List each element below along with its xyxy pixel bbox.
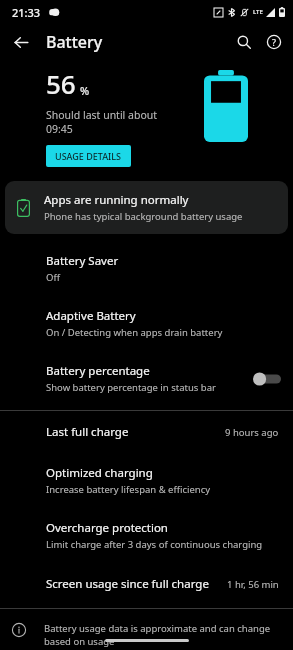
staticText: Overcharge protection <box>46 520 168 536</box>
button[interactable]: USAGE DETAILS <box>46 145 131 167</box>
staticText: Adaptive Battery <box>46 308 136 324</box>
staticText: Last full charge <box>46 424 225 440</box>
staticText: Battery usage data is approximate and ca… <box>44 622 271 635</box>
button[interactable]: Help <box>261 29 287 55</box>
button[interactable]: Overcharge protection <box>0 508 293 563</box>
button[interactable]: Last full charge <box>0 411 293 453</box>
staticText: LTE <box>253 8 263 16</box>
button[interactable]: Back <box>8 29 34 55</box>
button[interactable]: Apps are running normally <box>5 181 288 234</box>
staticText: Optimized charging <box>46 465 153 481</box>
button[interactable]: Adaptive Battery <box>0 296 293 351</box>
staticText: On / Detecting when apps drain battery <box>46 326 223 339</box>
staticText: Show battery percentage in status bar <box>46 381 216 394</box>
staticText: based on usage <box>44 635 115 648</box>
staticText: 09:45 <box>46 122 73 136</box>
button[interactable]: Battery percentage <box>0 351 293 406</box>
staticText: Battery <box>46 31 103 53</box>
staticText: 21:33 <box>12 5 41 20</box>
staticText: Increase battery lifespan & efficiency <box>46 483 211 496</box>
staticText: Phone has typical background battery usa… <box>44 210 243 223</box>
staticText: 1 hr, 56 min <box>227 578 279 591</box>
staticText: Screen usage since full charge <box>46 576 227 592</box>
button[interactable]: Search <box>231 29 257 55</box>
staticText: USAGE DETAILS <box>55 150 122 162</box>
staticText: ? <box>272 36 276 48</box>
staticText: Apps are running normally <box>44 192 189 208</box>
staticText: Off <box>46 271 60 284</box>
button[interactable]: Screen usage since full charge <box>0 563 293 605</box>
staticText: Battery Saver <box>46 253 119 269</box>
staticText: Should last until about <box>46 108 158 122</box>
staticText: 9 hours ago <box>225 426 279 439</box>
staticText: Battery percentage <box>46 363 150 379</box>
staticText: Limit charge after 3 days of continuous … <box>46 538 263 551</box>
button[interactable]: Battery Saver <box>0 241 293 296</box>
button[interactable]: Optimized charging <box>0 453 293 508</box>
staticText: % <box>80 83 90 98</box>
staticText: 56 <box>46 66 76 101</box>
